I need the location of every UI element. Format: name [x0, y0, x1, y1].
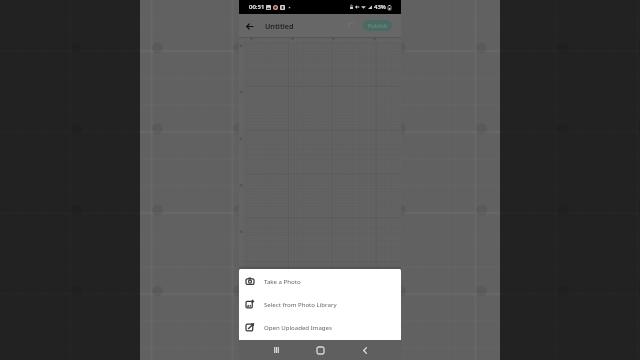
- staticText: 43%: [374, 3, 386, 11]
- staticText: Publish: [368, 22, 388, 29]
- button[interactable]: Open Uploaded Images: [239, 315, 401, 338]
- staticText: Open Uploaded Images: [264, 323, 332, 331]
- button[interactable]: Select from Photo Library: [239, 292, 401, 315]
- button[interactable]: Recent apps: [267, 341, 285, 359]
- button[interactable]: Back: [356, 341, 374, 359]
- staticText: Take a Photo: [264, 277, 301, 285]
- staticText: Untitled: [265, 21, 294, 31]
- button[interactable]: Take a Photo: [239, 269, 401, 292]
- staticText: 00:51: [249, 3, 265, 11]
- staticText: Select from Photo Library: [264, 300, 337, 308]
- button[interactable]: Home: [311, 341, 329, 359]
- button[interactable]: Back: [241, 18, 257, 34]
- button[interactable]: Publish: [363, 20, 392, 31]
